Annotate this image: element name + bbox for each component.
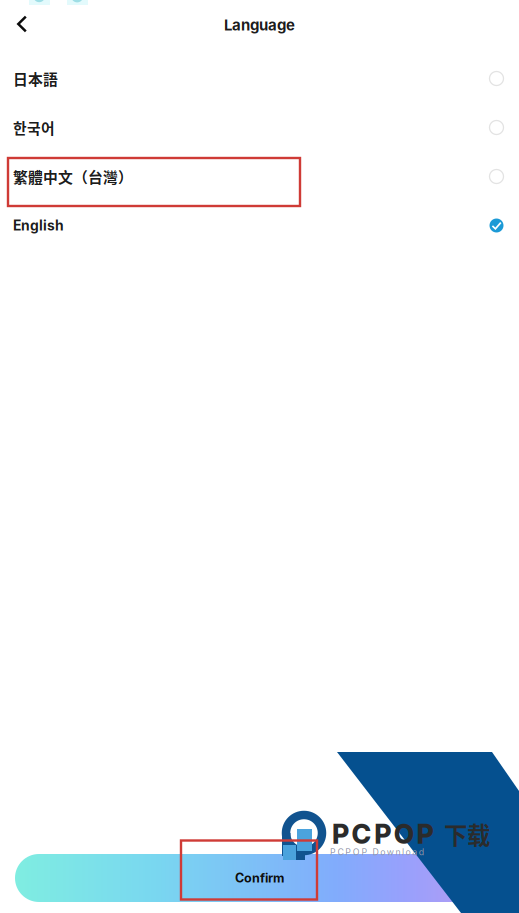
button[interactable]: 日本語 (0, 54, 519, 103)
button[interactable]: English (0, 201, 519, 250)
staticText: 한국어 (13, 117, 55, 138)
button[interactable]: 繁體中文（台灣） (0, 152, 519, 201)
staticText: Confirm (235, 870, 284, 886)
staticText: 日本語 (13, 68, 58, 89)
button[interactable]: Confirm (0, 854, 519, 902)
button[interactable]: 한국어 (0, 103, 519, 152)
staticText: 下载 (444, 817, 490, 851)
staticText: PCPOP Download (330, 847, 424, 857)
staticText: PCPOP (332, 818, 433, 850)
staticText: Language (224, 16, 295, 34)
staticText: 繁體中文（台灣） (13, 166, 133, 187)
button[interactable]: Back (0, 3, 41, 50)
staticText: English (13, 217, 64, 234)
